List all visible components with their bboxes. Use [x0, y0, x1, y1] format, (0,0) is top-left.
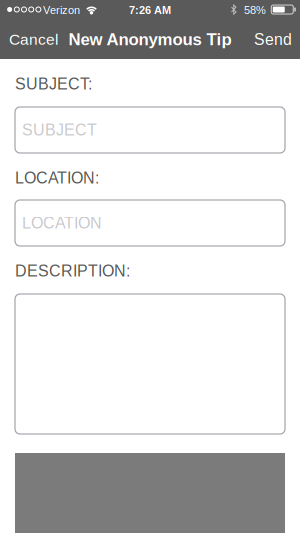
staticText: LOCATION:	[15, 169, 99, 187]
staticText: SUBJECT	[22, 121, 97, 139]
staticText: DESCRIPTION:	[15, 262, 130, 280]
button[interactable]: Cancel	[0, 22, 64, 57]
staticText: Send	[254, 31, 292, 48]
staticText: 7:26 AM	[129, 4, 171, 16]
staticText: Cancel	[9, 31, 58, 48]
button[interactable]: Send	[248, 22, 300, 57]
staticText: Verizon	[43, 4, 80, 16]
staticText: SUBJECT:	[15, 75, 92, 93]
staticText: New Anonymous Tip	[68, 30, 231, 49]
staticText: 58%	[244, 4, 266, 16]
staticText: LOCATION	[22, 214, 102, 232]
